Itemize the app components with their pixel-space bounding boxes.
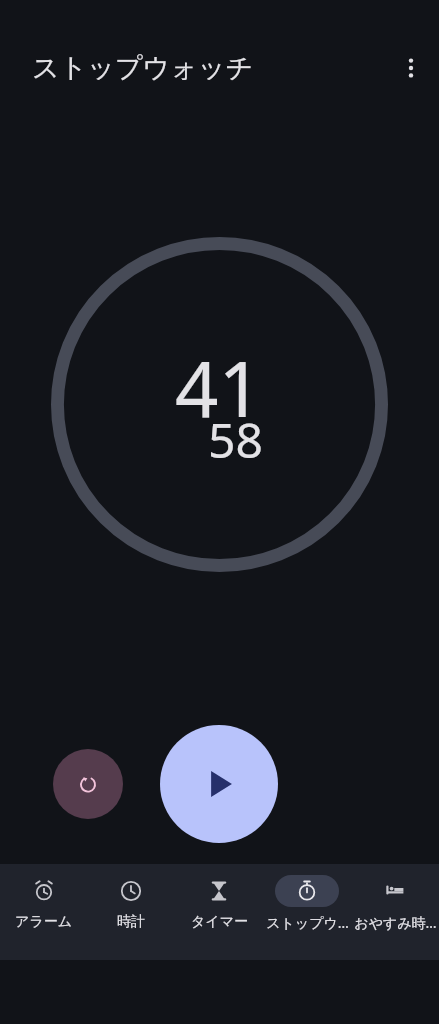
button[interactable]: アラーム [0,864,87,931]
staticText: 58 [208,407,263,472]
staticText: ストップウ… [266,913,349,932]
staticText: タイマー [191,913,248,931]
button[interactable]: Start [160,725,278,843]
staticText: おやすみ時… [354,913,437,932]
staticText: 41 [175,336,262,440]
button[interactable]: More options [391,48,431,88]
button[interactable]: 時計 [87,864,175,931]
button[interactable]: Reset [53,749,123,819]
staticText: 時計 [117,913,145,931]
staticText: ストップウォッチ [32,51,254,85]
button[interactable]: タイマー [175,864,263,931]
button[interactable]: ストップウ… [263,864,351,932]
staticText: アラーム [15,913,72,931]
button[interactable]: おやすみ時… [351,864,439,932]
